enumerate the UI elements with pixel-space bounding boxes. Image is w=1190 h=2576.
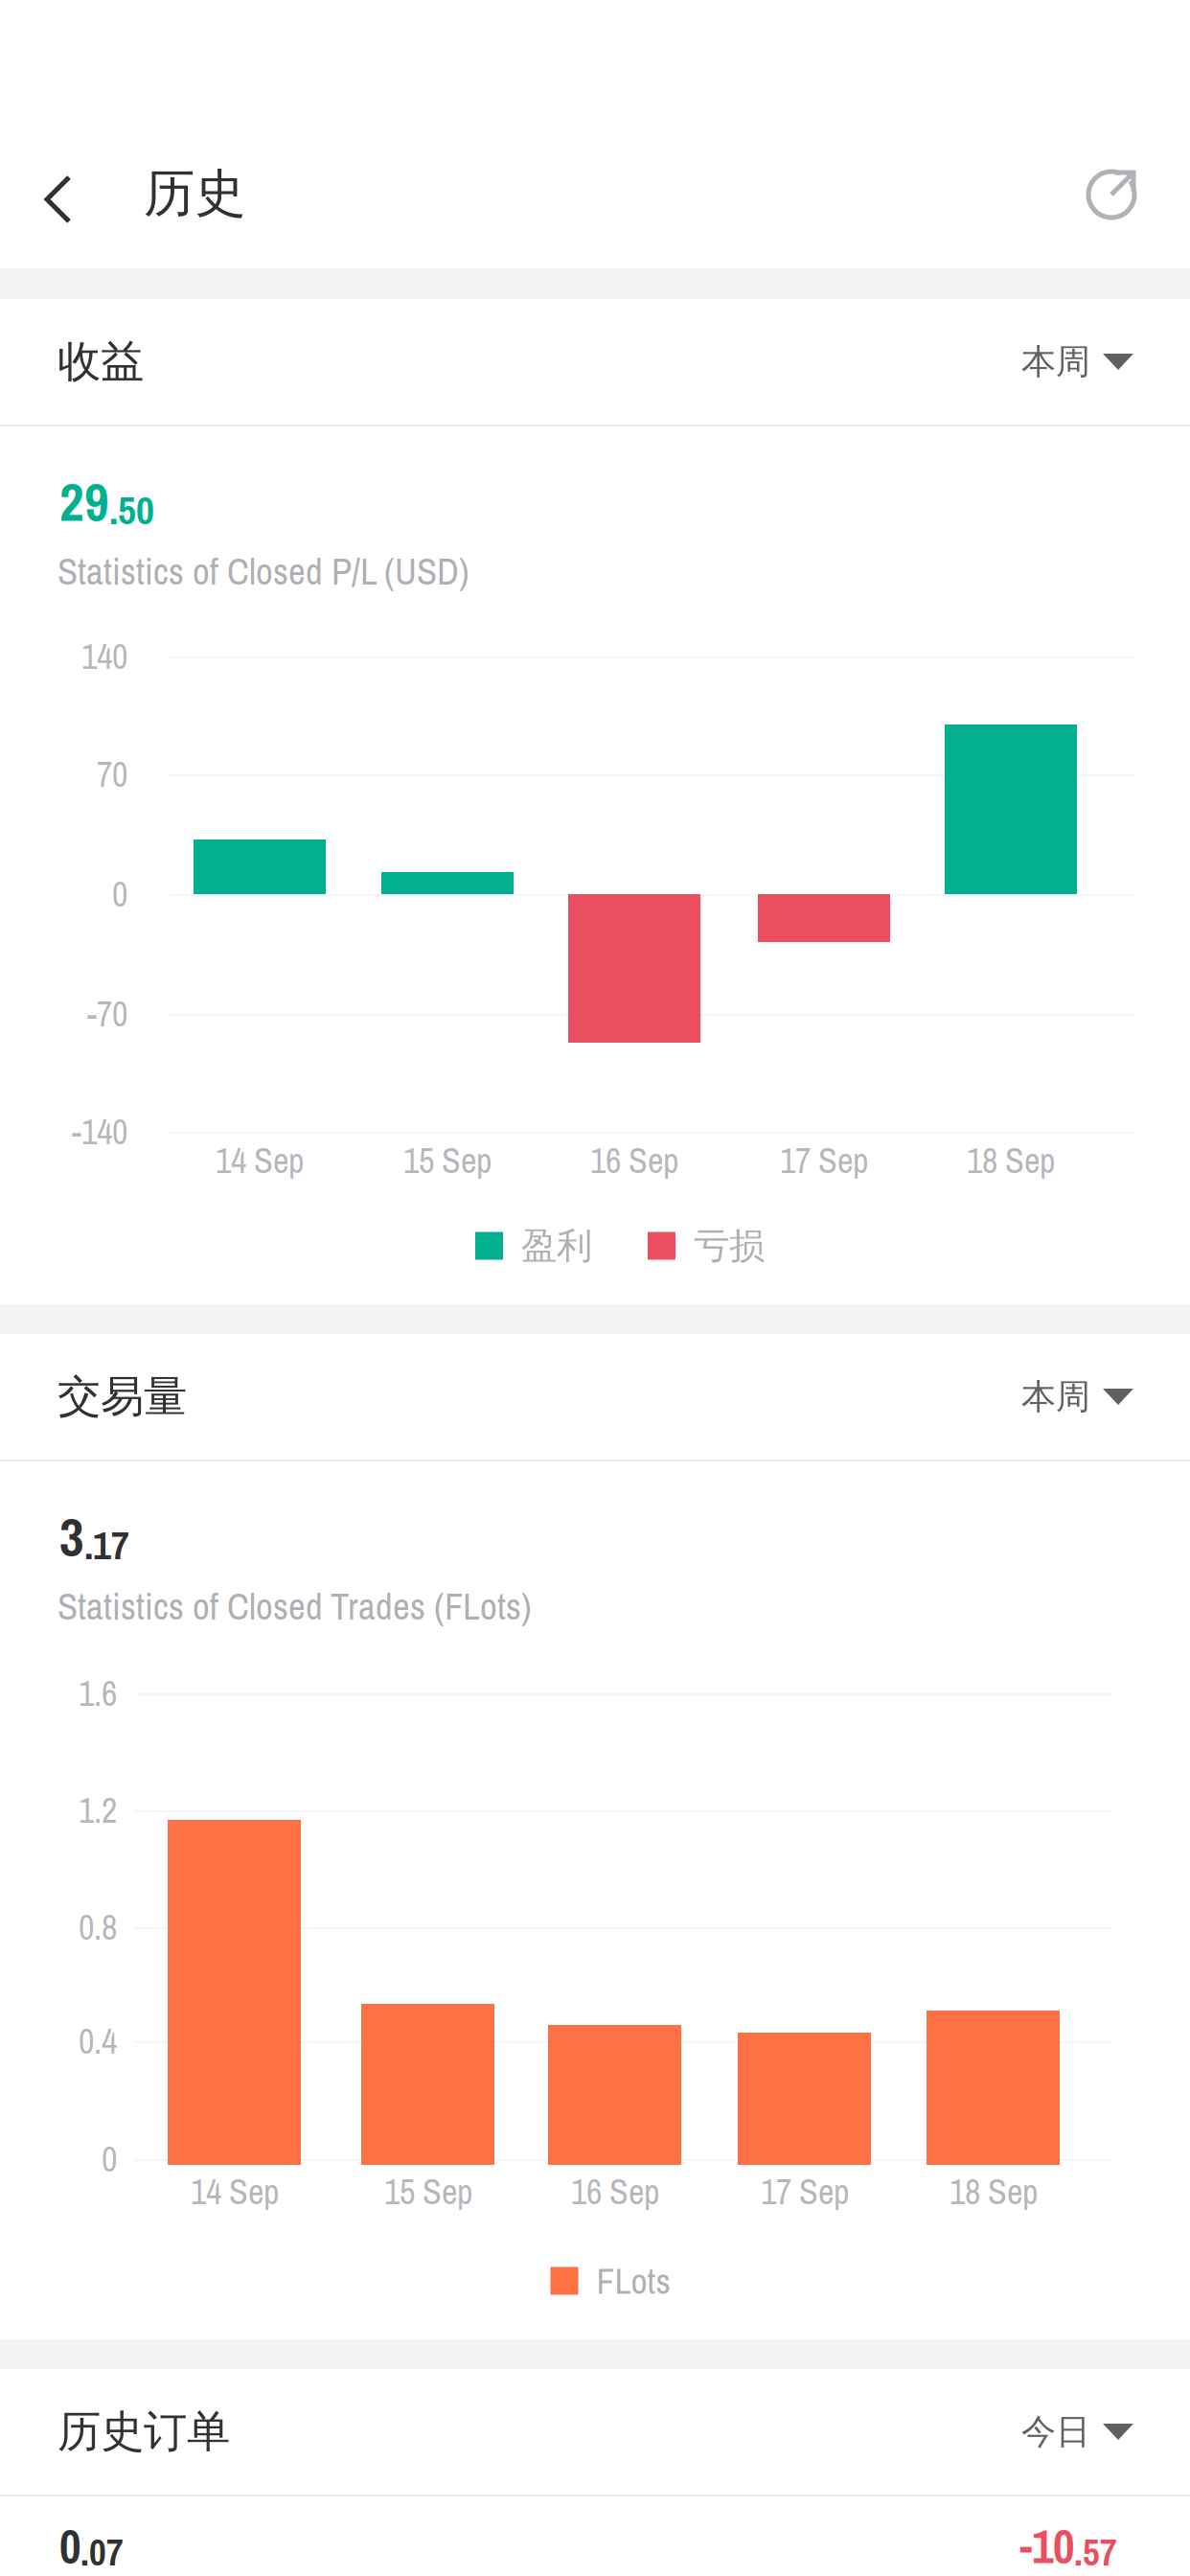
- staticText: 0: [59, 2514, 80, 2576]
- staticText: 0: [112, 871, 127, 917]
- staticText: 15 Sep: [384, 2169, 472, 2215]
- staticText: 交易量: [57, 1369, 187, 1424]
- staticText: 0.4: [79, 2018, 117, 2065]
- staticText: 亏损: [694, 1223, 765, 1268]
- button[interactable]: 本周: [1021, 1334, 1190, 1460]
- button[interactable]: 今日: [1021, 2369, 1190, 2495]
- staticText: 16 Sep: [571, 2169, 659, 2215]
- staticText: .57: [1074, 2527, 1117, 2576]
- staticText: 本周: [1021, 1375, 1090, 1419]
- staticText: 16 Sep: [590, 1137, 678, 1184]
- staticText: 今日: [1021, 2410, 1090, 2454]
- staticText: 1.2: [79, 1787, 117, 1834]
- button[interactable]: Back: [0, 137, 117, 262]
- staticText: 本周: [1021, 340, 1090, 384]
- staticText: .50: [109, 483, 154, 537]
- staticText: 18 Sep: [950, 2169, 1038, 2215]
- staticText: 14 Sep: [216, 1137, 304, 1184]
- staticText: -10: [1019, 2514, 1074, 2576]
- staticText: 1.6: [79, 1670, 117, 1717]
- staticText: 15 Sep: [403, 1137, 492, 1184]
- button[interactable]: 本周: [1021, 299, 1190, 425]
- staticText: 0.8: [79, 1904, 117, 1950]
- staticText: 收益: [57, 334, 144, 389]
- staticText: 历史: [144, 161, 245, 226]
- staticText: 盈利: [521, 1223, 592, 1268]
- staticText: .07: [80, 2527, 124, 2576]
- staticText: Statistics of Closed P/L (USD): [57, 546, 469, 596]
- staticText: Statistics of Closed Trades (FLots): [57, 1581, 532, 1631]
- staticText: 0: [102, 2136, 117, 2182]
- staticText: -70: [87, 991, 127, 1037]
- staticText: 18 Sep: [967, 1137, 1055, 1184]
- staticText: 14 Sep: [191, 2169, 279, 2215]
- staticText: 17 Sep: [780, 1137, 868, 1184]
- staticText: 3: [59, 1500, 84, 1573]
- staticText: -140: [72, 1109, 127, 1155]
- staticText: 70: [97, 751, 127, 798]
- staticText: 29: [59, 465, 109, 538]
- staticText: 17 Sep: [761, 2169, 849, 2215]
- staticText: FLots: [596, 2257, 670, 2305]
- staticText: 历史订单: [57, 2404, 230, 2459]
- staticText: .17: [84, 1518, 129, 1572]
- staticText: 140: [81, 633, 127, 680]
- button[interactable]: Share: [1046, 129, 1177, 260]
